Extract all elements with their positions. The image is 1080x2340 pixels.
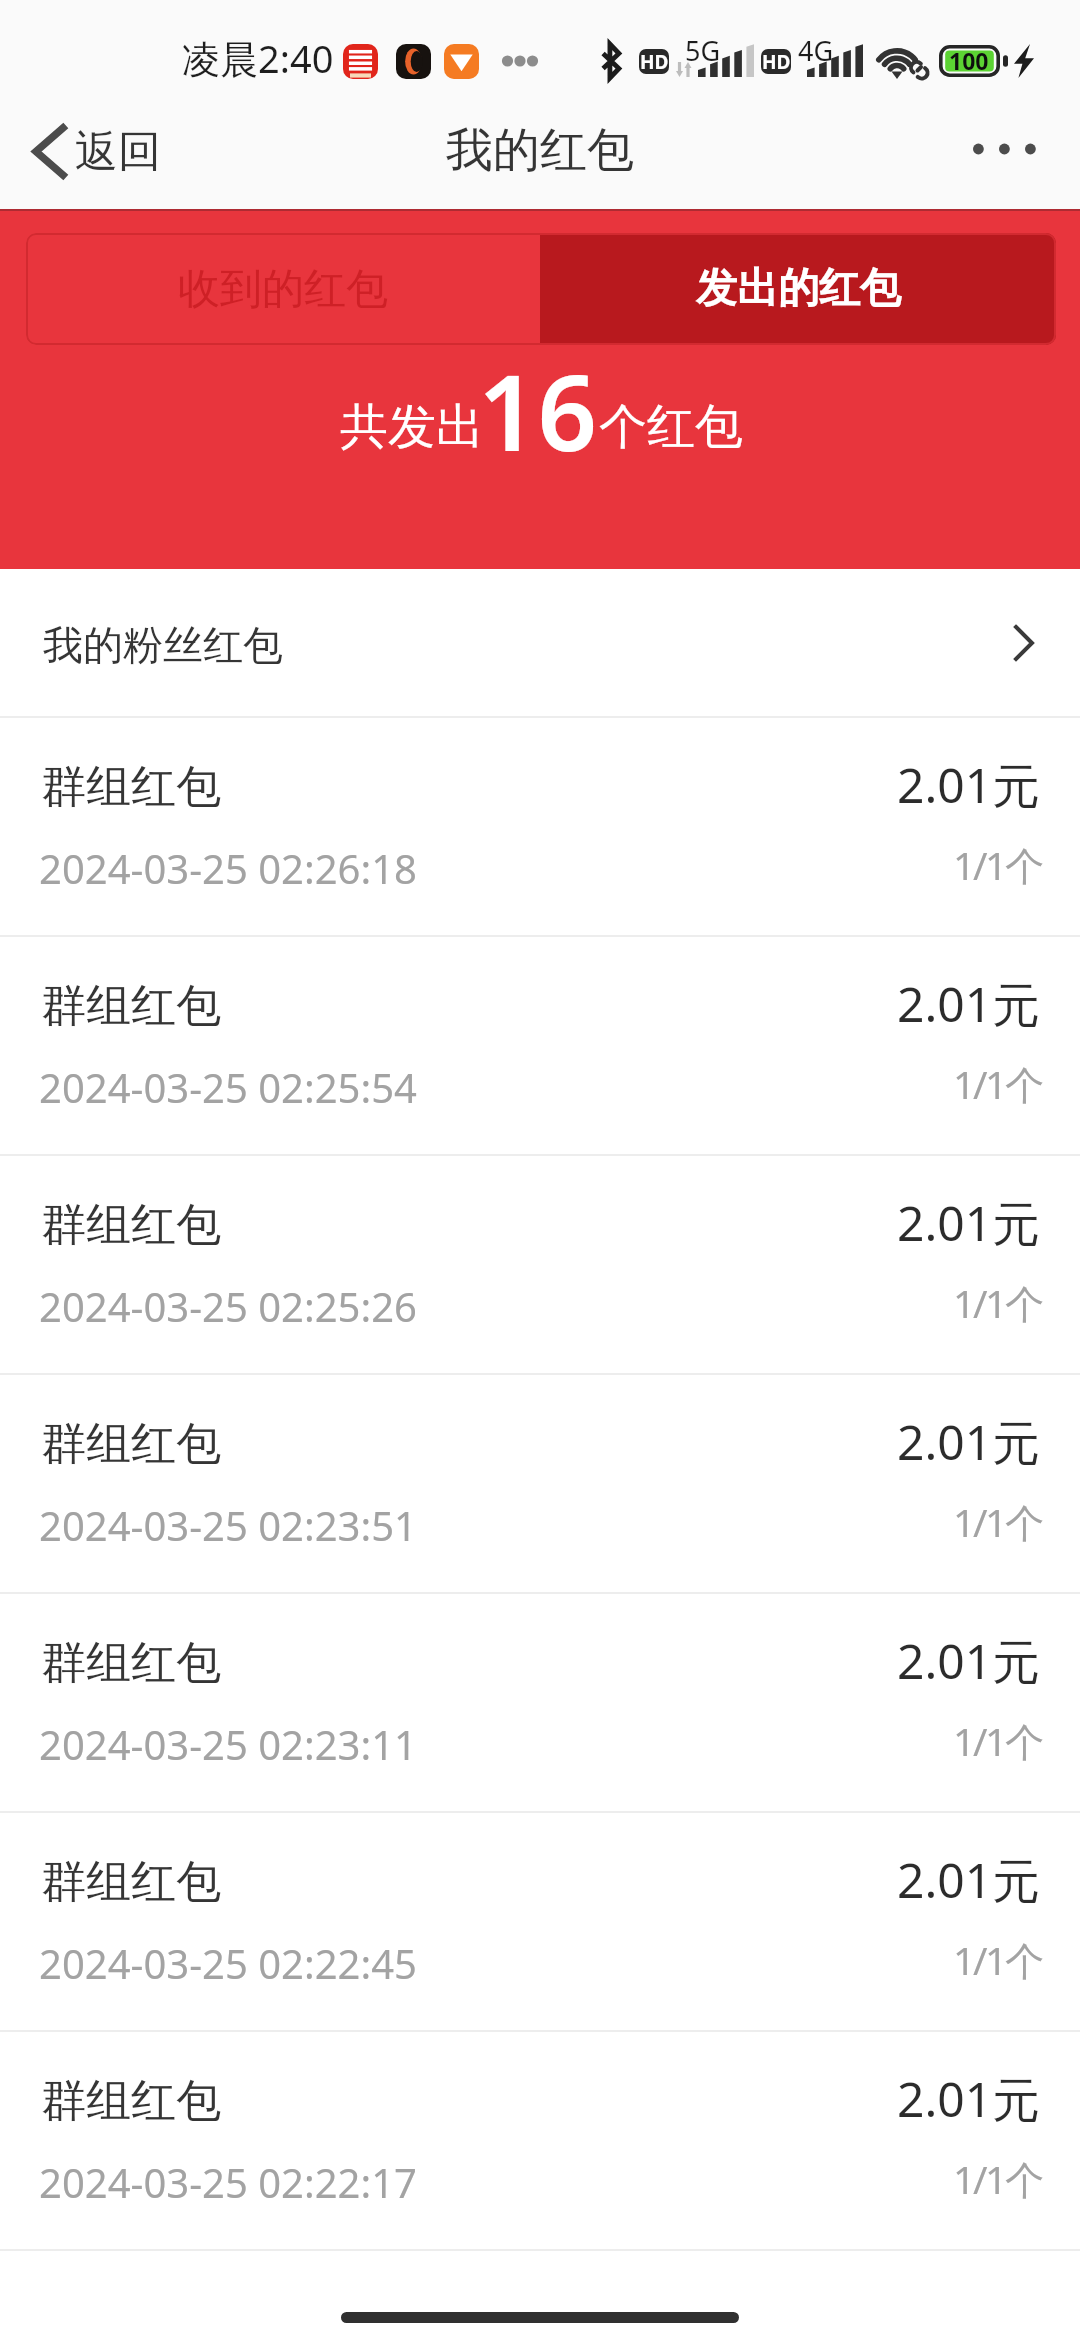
staticText: 16 [478,340,597,482]
staticText: 群组红包 [41,1854,221,1911]
staticText: 收到的红包 [178,263,388,316]
button[interactable]: 群组红包 [0,1375,1080,1592]
staticText: 群组红包 [41,2073,221,2130]
button[interactable]: 返回 [33,105,161,209]
button[interactable]: 收到的红包 [26,233,540,345]
button[interactable]: 群组红包 [0,718,1080,935]
staticText: 1/1个 [953,838,1042,891]
staticText: 2024-03-25 02:25:26 [39,1279,417,1333]
staticText: 返回 [75,125,161,179]
button[interactable]: 群组红包 [0,1813,1080,2030]
staticText: 发出的红包 [696,263,901,315]
staticText: 2.01元 [897,971,1041,1037]
button[interactable]: 群组红包 [0,937,1080,1154]
button[interactable]: 群组红包 [0,1594,1080,1811]
staticText: 1/1个 [953,1276,1042,1329]
staticText: 2024-03-25 02:23:11 [39,1717,417,1771]
staticText: 2.01元 [897,1628,1041,1694]
staticText: 2.01元 [897,1847,1041,1913]
staticText: HD [640,49,669,74]
staticText: 共发出 [340,397,484,457]
staticText: 2024-03-25 02:26:18 [39,841,417,895]
staticText: HD [762,49,791,74]
staticText: 我的粉丝红包 [43,620,283,670]
staticText: 2024-03-25 02:25:54 [39,1060,417,1114]
button[interactable]: 群组红包 [0,2032,1080,2249]
staticText: 2.01元 [897,1190,1041,1256]
staticText: 1/1个 [953,2152,1042,2205]
button[interactable]: More options [950,105,1080,209]
staticText: 2.01元 [897,2066,1041,2132]
staticText: 群组红包 [41,1197,221,1254]
staticText: 群组红包 [41,978,221,1035]
staticText: 2024-03-25 02:23:51 [39,1498,417,1552]
staticText: 2024-03-25 02:22:17 [39,2155,417,2209]
staticText: 2.01元 [897,1409,1041,1475]
staticText: 4G [798,32,834,69]
staticText: 1/1个 [953,1057,1042,1110]
staticText: 群组红包 [41,1416,221,1473]
staticText: 5G [685,32,721,69]
staticText: 我的红包 [446,121,634,180]
staticText: 2.01元 [897,752,1041,818]
staticText: 个红包 [599,397,743,457]
staticText: 100 [949,45,989,76]
staticText: 群组红包 [41,1635,221,1692]
button[interactable]: 我的粉丝红包 [0,569,1080,716]
staticText: 群组红包 [41,759,221,816]
staticText: 1/1个 [953,1495,1042,1548]
staticText: 凌晨2:40 [182,32,334,84]
staticText: 1/1个 [953,1714,1042,1767]
staticText: 2024-03-25 02:22:45 [39,1936,417,1990]
staticText: 1/1个 [953,1933,1042,1986]
button[interactable]: 群组红包 [0,1156,1080,1373]
button[interactable]: 发出的红包 [540,233,1056,345]
